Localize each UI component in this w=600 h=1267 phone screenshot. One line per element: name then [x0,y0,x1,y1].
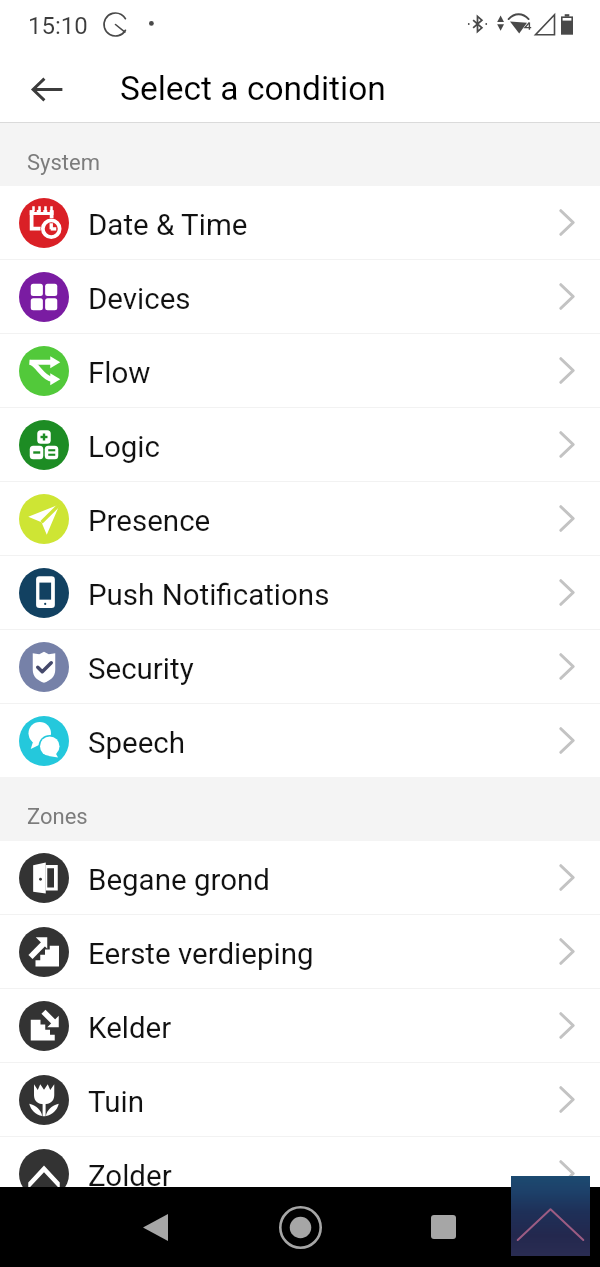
button[interactable]: Navigate up [19,61,75,117]
staticText: System [27,150,100,176]
button[interactable]: Security [0,630,600,703]
staticText: Security [88,652,194,687]
button[interactable]: Presence [0,482,600,555]
staticText: Kelder [88,1011,172,1046]
staticText: Eerste verdieping [88,937,314,972]
staticText: Zones [27,804,88,830]
staticText: Select a condition [120,69,386,108]
staticText: Zolder [88,1159,172,1194]
staticText: Speech [88,726,186,761]
button[interactable]: Logic [0,408,600,481]
button[interactable]: Devices [0,260,600,333]
button[interactable]: Eerste verdieping [0,915,600,988]
button[interactable]: Speech [0,704,600,777]
staticText: Flow [88,356,151,391]
button[interactable]: Tuin [0,1063,600,1136]
button[interactable]: Recent apps [408,1192,478,1262]
button[interactable]: Home [265,1192,335,1262]
button[interactable]: Back [120,1192,190,1262]
staticText: Presence [88,504,211,539]
staticText: Push Notifications [88,578,330,613]
button[interactable]: Date & Time [0,186,600,259]
button[interactable]: Flow [0,334,600,407]
button[interactable]: Kelder [0,989,600,1062]
staticText: 15:10 [28,12,88,40]
staticText: Begane grond [88,863,270,898]
staticText: Tuin [88,1085,144,1120]
button[interactable]: Push Notifications [0,556,600,629]
staticText: Logic [88,430,160,465]
button[interactable]: Gesture hint overlay [511,1176,590,1256]
button[interactable]: Zolder [0,1137,600,1210]
staticText: Date & Time [88,208,248,243]
staticText: Devices [88,282,191,317]
button[interactable]: Begane grond [0,841,600,914]
